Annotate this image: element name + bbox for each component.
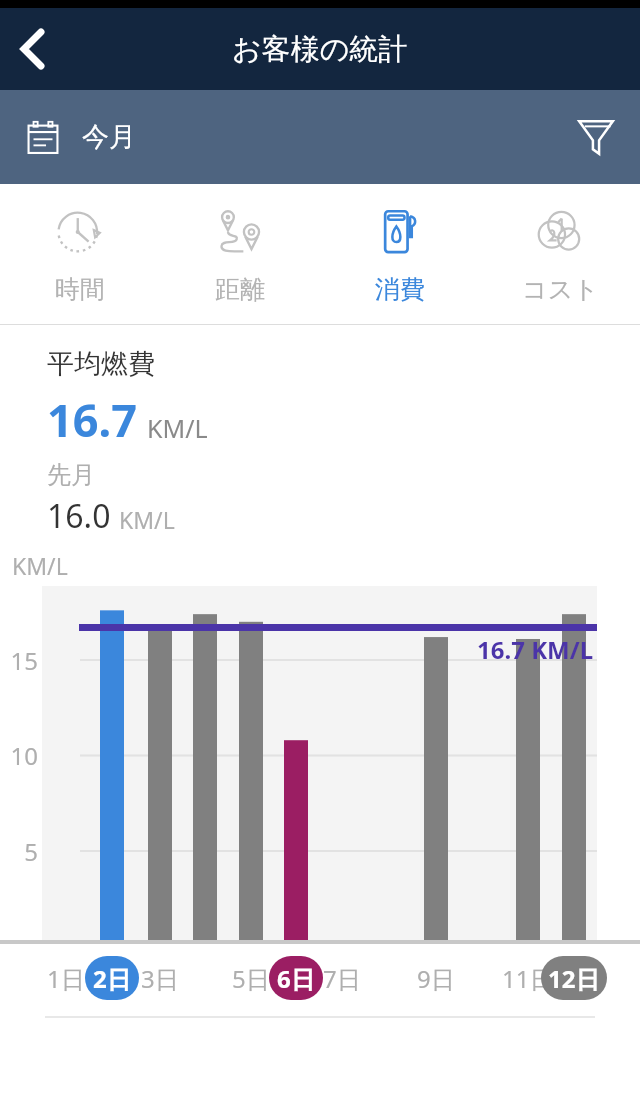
- staticText: 先月: [47, 460, 95, 490]
- staticText: 5日: [232, 962, 270, 995]
- button[interactable]: 今月: [24, 118, 136, 156]
- staticText: 9日: [417, 962, 455, 995]
- button[interactable]: 3日: [133, 956, 187, 1000]
- staticText: 16.0: [47, 494, 111, 538]
- button[interactable]: Filter: [568, 109, 624, 165]
- staticText: 10: [10, 739, 38, 772]
- staticText: 6日: [277, 962, 315, 995]
- staticText: 消費: [375, 274, 425, 305]
- button[interactable]: 11日: [495, 956, 561, 1000]
- button[interactable]: 時間: [0, 184, 160, 324]
- staticText: 12日: [548, 962, 600, 995]
- button[interactable]: 7日: [315, 956, 369, 1000]
- button[interactable]: 6日: [269, 956, 323, 1000]
- staticText: 3日: [141, 962, 179, 995]
- button[interactable]: 9日: [409, 956, 463, 1000]
- staticText: 16.7 KM/L: [477, 633, 594, 666]
- staticText: 15: [10, 644, 38, 677]
- staticText: 距離: [215, 274, 265, 305]
- staticText: 1日: [47, 962, 85, 995]
- button[interactable]: Back: [6, 23, 58, 75]
- staticText: 7日: [323, 962, 361, 995]
- staticText: 2日: [93, 962, 131, 995]
- staticText: お客様の統計: [232, 31, 408, 68]
- staticText: 16.7: [47, 389, 137, 450]
- button[interactable]: 2日: [85, 956, 139, 1000]
- staticText: 5: [24, 835, 38, 868]
- staticText: KM/L: [119, 504, 175, 535]
- button[interactable]: コスト: [480, 184, 640, 324]
- button[interactable]: 消費: [320, 184, 480, 324]
- button[interactable]: 距離: [160, 184, 320, 324]
- staticText: 時間: [55, 274, 105, 305]
- button[interactable]: 5日: [224, 956, 278, 1000]
- staticText: 平均燃費: [47, 347, 155, 381]
- staticText: コスト: [522, 274, 599, 305]
- staticText: 11日: [502, 962, 554, 995]
- staticText: KM/L: [12, 550, 68, 581]
- staticText: 今月: [82, 120, 136, 154]
- button[interactable]: 1日: [39, 956, 93, 1000]
- staticText: KM/L: [147, 411, 208, 445]
- button[interactable]: 12日: [541, 956, 607, 1000]
